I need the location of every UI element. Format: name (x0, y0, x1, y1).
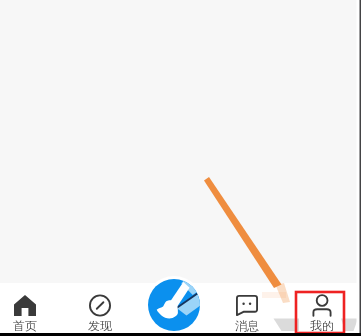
button[interactable]: New post (145, 276, 203, 334)
button[interactable]: 我的 (291, 288, 353, 333)
button[interactable]: 发现 (69, 288, 131, 333)
staticText: 首页 (13, 318, 37, 333)
button[interactable]: 消息 (216, 288, 278, 333)
staticText: 消息 (235, 318, 259, 333)
staticText: 我的 (310, 318, 334, 333)
button[interactable]: 首页 (0, 288, 56, 333)
staticText: 发现 (88, 318, 112, 333)
